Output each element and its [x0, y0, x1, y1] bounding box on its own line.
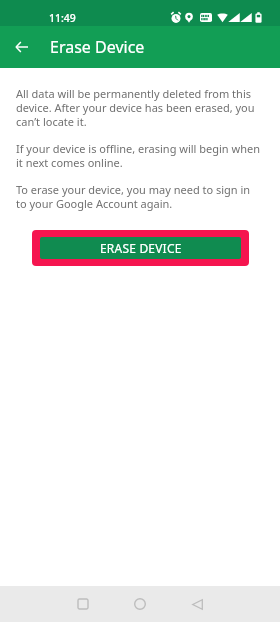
staticText: ERASE DEVICE	[100, 240, 182, 256]
button[interactable]: Back	[174, 586, 220, 622]
staticText: If your device is offline, erasing will …	[16, 141, 261, 170]
staticText: To erase your device, you may need to si…	[16, 182, 261, 211]
staticText: 11:49	[49, 11, 76, 25]
button[interactable]: Home	[117, 586, 163, 622]
button[interactable]: ERASE DEVICE	[32, 230, 249, 266]
staticText: All data will be permanently deleted fro…	[16, 86, 261, 129]
staticText: Erase Device	[50, 36, 145, 58]
button[interactable]: Recent apps	[60, 586, 106, 622]
button[interactable]: Back	[0, 26, 42, 68]
